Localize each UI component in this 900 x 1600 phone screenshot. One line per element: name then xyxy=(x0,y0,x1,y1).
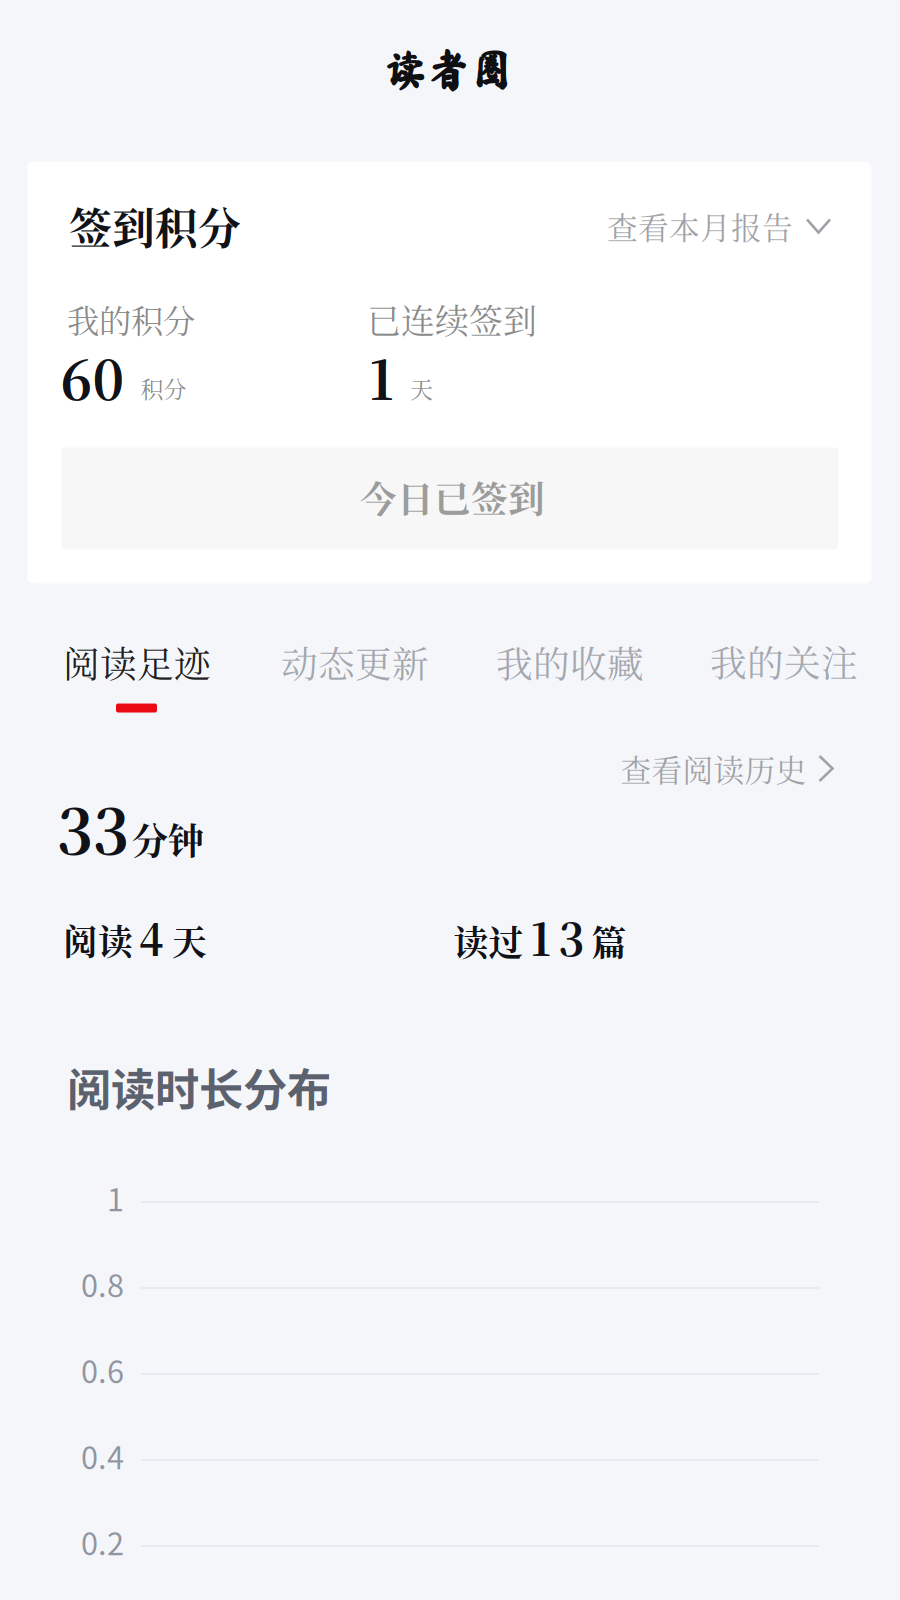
staticText: 天 xyxy=(410,372,433,405)
staticText: 33 xyxy=(57,784,129,872)
staticText: 我的收藏 xyxy=(496,636,644,688)
staticText: 0.4 xyxy=(81,1434,124,1478)
staticText: 今日已签到 xyxy=(360,471,545,523)
staticText: 3 xyxy=(558,905,584,969)
staticText: 1 xyxy=(530,905,551,969)
staticText: 动态更新 xyxy=(281,636,429,688)
staticText: 4 xyxy=(139,907,164,967)
button[interactable]: 今日已签到 xyxy=(61,447,838,549)
staticText: 阅读足迹 xyxy=(63,636,211,688)
staticText: 阅读时长分布 xyxy=(67,1055,331,1119)
staticText: 0.6 xyxy=(81,1348,124,1392)
button[interactable]: 我的收藏 xyxy=(478,620,662,704)
staticText: 0.8 xyxy=(81,1262,124,1306)
button[interactable]: 动态更新 xyxy=(263,620,447,704)
staticText: 阅读 xyxy=(63,915,133,965)
staticText: 我的积分 xyxy=(67,296,195,342)
staticText: 签到积分 xyxy=(69,195,241,257)
staticText: 积分 xyxy=(140,372,186,405)
staticText: 查看本月报告 xyxy=(607,204,793,248)
button[interactable]: 查看阅读历史 xyxy=(610,730,842,807)
staticText: 篇 xyxy=(591,916,626,966)
staticText: 已连续签到 xyxy=(367,295,537,343)
staticText: 我的关注 xyxy=(710,635,858,687)
staticText: 0.2 xyxy=(81,1520,124,1564)
staticText: 60 xyxy=(60,339,124,415)
staticText: 分钟 xyxy=(132,813,204,865)
staticText: 读过 xyxy=(453,916,523,966)
staticText: 查看阅读历史 xyxy=(620,746,806,791)
staticText: 1 xyxy=(369,339,394,415)
staticText: 天 xyxy=(172,915,207,965)
button[interactable]: 阅读足迹 xyxy=(45,620,229,704)
staticText: 读者圈 xyxy=(383,49,512,91)
button[interactable]: 查看本月报告 xyxy=(597,188,840,264)
button[interactable]: 我的关注 xyxy=(692,619,876,703)
staticText: 1 xyxy=(107,1176,124,1220)
